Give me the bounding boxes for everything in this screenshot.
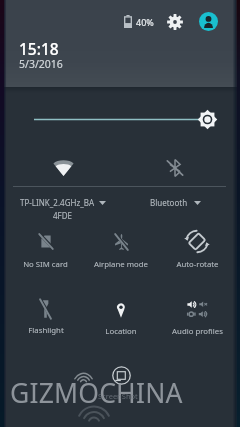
button[interactable]: Bluetooth [119,149,231,186]
staticText: Audio profiles [172,326,223,337]
staticText: 5/3/2016 [19,57,63,71]
staticText: Flashlight [28,325,64,336]
button[interactable]: Audio profiles [159,290,235,354]
button[interactable]: No SIM card [8,224,83,290]
staticText: 15:18 [19,38,59,59]
button[interactable]: Airplane mode [83,224,159,290]
button[interactable]: Cast screen [110,366,132,384]
staticText: No SIM card [23,259,68,270]
button[interactable]: Auto-rotate [159,224,235,290]
button[interactable]: Settings [166,13,184,31]
staticText: 40% [136,16,154,28]
staticText: GIZMOCHINA [10,375,183,411]
button[interactable]: TP-LINK_2.4GHz_BA [7,187,119,224]
button[interactable]: Location [83,290,159,354]
button[interactable]: Wi-Fi [7,149,119,186]
staticText: Location [105,326,137,337]
staticText: Bluetooth [150,197,188,208]
button[interactable]: Brightness [0,93,240,149]
button[interactable]: User account [199,12,218,31]
button[interactable]: Bluetooth [119,187,231,224]
staticText: TP-LINK_2.4GHz_BA [20,197,95,208]
staticText: Auto-rotate [176,259,219,270]
staticText: Airplane mode [94,259,148,270]
button[interactable]: Flashlight [8,290,83,354]
staticText: 4FDE [53,210,73,221]
staticText: ScreenShot [98,391,138,401]
